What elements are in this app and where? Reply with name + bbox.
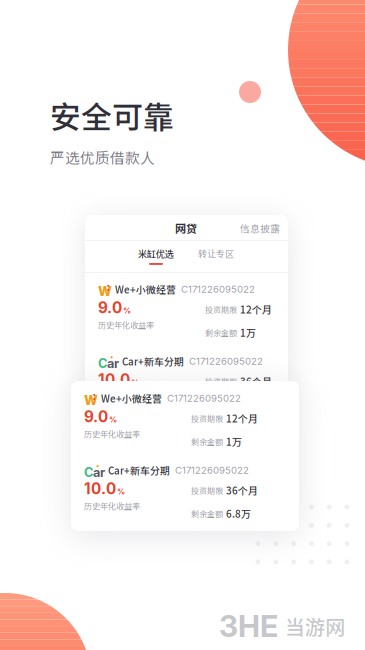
staticText: C [98,356,107,371]
button[interactable]: 转让专区 [190,244,242,268]
staticText: 剩余金额 [191,508,223,519]
staticText: 10.0 [98,371,130,389]
staticText: 安全可靠 [50,93,174,137]
staticText: a [93,465,100,480]
staticText: 信息披露 [240,221,280,235]
staticText: 剩余金额 [205,399,237,410]
staticText: % [109,415,117,424]
staticText: 历史年化收益率 [98,391,154,403]
staticText: 36个月 [226,483,258,497]
button[interactable]: C [98,354,288,405]
staticText: 严选优质借款人 [50,146,155,168]
staticText: 米缸优选 [138,247,174,260]
staticText: 历史年化收益率 [98,319,154,331]
button[interactable]: 米缸优选 [130,244,182,268]
staticText: 12个月 [240,302,272,316]
staticText: We+小微经营 [101,391,162,405]
staticText: 投资期限 [205,375,237,387]
staticText: 6.8万 [226,506,251,521]
button[interactable]: 信息披露 [236,217,284,239]
staticText: 网贷 [175,220,197,236]
staticText: W [98,284,112,299]
staticText: C171226095022 [181,283,255,295]
staticText: % [117,487,125,496]
button[interactable]: W [98,282,288,333]
staticText: 历史年化收益率 [84,428,140,440]
staticText: 12个月 [226,411,258,425]
staticText: 3HE [219,608,278,644]
staticText: 剩余金额 [205,327,237,338]
staticText: 当游网 [285,612,345,641]
staticText: % [131,378,139,387]
staticText: Car+新车分期 [108,463,170,477]
staticText: % [123,306,131,315]
button[interactable]: W [84,391,299,442]
staticText: C171226095022 [167,392,241,404]
staticText: 9.0 [84,408,108,426]
button[interactable]: 网贷 [163,217,209,239]
staticText: r [114,356,119,371]
staticText: C [84,465,93,480]
staticText: 历史年化收益率 [84,500,140,512]
staticText: r [100,465,105,480]
staticText: We+小微经营 [115,282,176,296]
staticText: 投资期限 [205,303,237,315]
staticText: 10.0 [84,480,116,498]
staticText: 36个月 [240,374,272,388]
staticText: 转让专区 [198,247,234,260]
staticText: 剩余金额 [191,436,223,447]
button[interactable]: C [84,463,299,514]
staticText: W [84,393,98,408]
staticText: 1万 [240,325,256,340]
staticText: a [107,356,114,371]
staticText: 1万 [226,434,242,449]
staticText: 9.0 [98,299,122,317]
staticText: 投资期限 [191,484,223,496]
staticText: Car+新车分期 [122,354,184,368]
staticText: C171226095022 [189,355,263,367]
staticText: 投资期限 [191,412,223,424]
staticText: C171226095022 [175,464,249,476]
